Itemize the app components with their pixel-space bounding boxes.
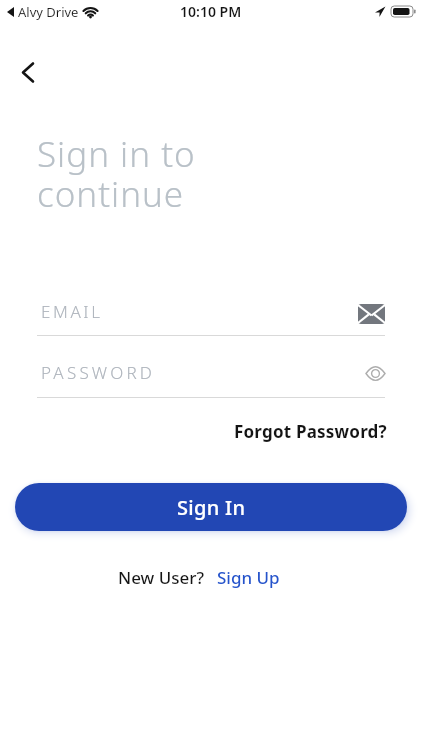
button[interactable] bbox=[7, 52, 47, 92]
staticText: Sign In bbox=[177, 494, 246, 521]
button[interactable]: Forgot Password? bbox=[234, 420, 387, 443]
staticText: 10:10 PM bbox=[180, 2, 242, 21]
staticText: Alvy Drive bbox=[18, 3, 79, 21]
staticText: EMAIL bbox=[41, 300, 103, 323]
staticText: New User? bbox=[118, 566, 205, 589]
staticText: Sign in to continue bbox=[37, 130, 196, 218]
button[interactable]: Sign Up bbox=[217, 566, 280, 589]
button[interactable]: Sign In bbox=[15, 483, 407, 531]
staticText: PASSWORD bbox=[41, 361, 156, 384]
